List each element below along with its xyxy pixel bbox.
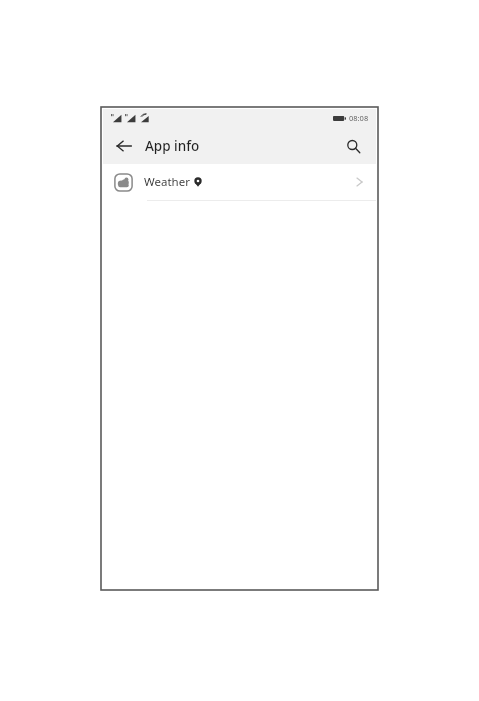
button[interactable]: Weather xyxy=(103,164,376,200)
staticText: Weather xyxy=(144,174,190,190)
staticText: 08:08 xyxy=(349,113,369,123)
button[interactable]: Back xyxy=(111,133,137,159)
staticText: App info xyxy=(145,137,200,155)
button[interactable]: Search xyxy=(340,133,366,159)
